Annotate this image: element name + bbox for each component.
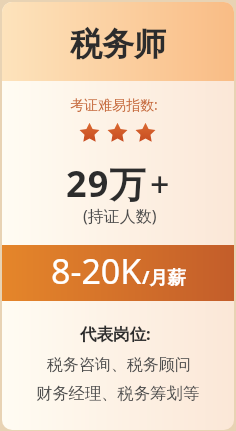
staticText: 财务经理、税务筹划等 — [36, 383, 199, 404]
button[interactable]: 8-20K — [2, 245, 234, 301]
button[interactable]: 税务师 — [2, 2, 234, 430]
staticText: 8-20K — [51, 248, 142, 294]
staticText: 代表岗位: — [80, 322, 151, 345]
staticText: 29万 — [66, 159, 147, 208]
staticText: 考证难易指数: — [70, 95, 158, 114]
staticText: /月薪 — [142, 265, 186, 290]
staticText: (持证人数) — [83, 205, 157, 227]
staticText: 税务咨询、税务顾问 — [47, 355, 191, 375]
staticText: 税务师 — [70, 24, 166, 64]
staticText: + — [150, 161, 170, 207]
